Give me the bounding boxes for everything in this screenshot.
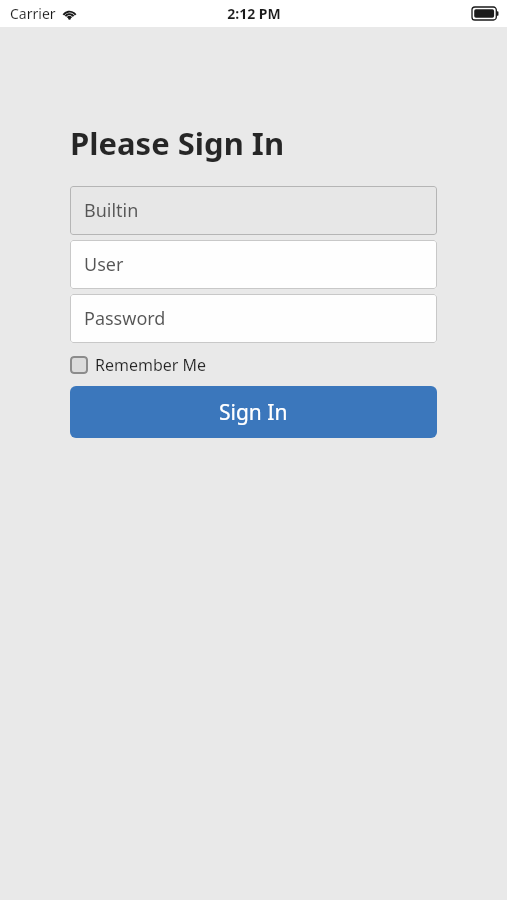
staticText: Carrier xyxy=(10,4,56,23)
staticText: Please Sign In xyxy=(70,122,285,164)
staticText: 2:12 PM xyxy=(227,4,281,23)
staticText: Builtin xyxy=(84,198,139,223)
staticText: Remember Me xyxy=(95,354,207,376)
button[interactable]: Remember Me xyxy=(70,354,207,376)
staticText: Password xyxy=(84,306,166,331)
button[interactable]: Password xyxy=(70,294,437,343)
staticText: Sign In xyxy=(219,398,288,427)
button[interactable]: Builtin xyxy=(70,186,437,235)
button[interactable]: User xyxy=(70,240,437,289)
button[interactable]: Sign In xyxy=(70,386,437,438)
staticText: User xyxy=(84,252,124,277)
